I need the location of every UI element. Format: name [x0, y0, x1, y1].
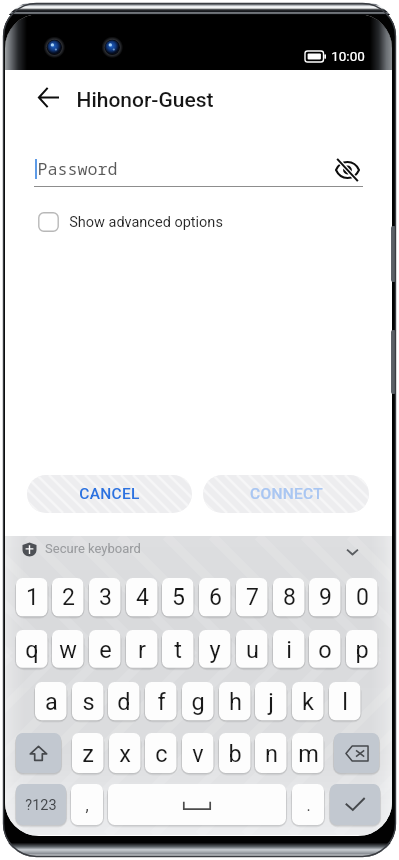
- staticText: 3: [99, 584, 112, 611]
- staticText: 8: [283, 584, 296, 611]
- staticText: y: [209, 636, 221, 664]
- button[interactable]: Show password: [336, 160, 359, 180]
- button[interactable]: x: [107, 732, 143, 777]
- staticText: b: [228, 740, 242, 768]
- button[interactable]: h: [217, 681, 253, 724]
- staticText: w: [59, 636, 77, 664]
- button[interactable]: n: [253, 732, 289, 777]
- staticText: .: [306, 796, 311, 815]
- button[interactable]: .: [290, 783, 326, 829]
- button[interactable]: q: [14, 629, 50, 672]
- button[interactable]: a: [33, 681, 69, 724]
- staticText: i: [286, 636, 292, 664]
- staticText: Password: [37, 157, 118, 180]
- staticText: 5: [172, 584, 185, 611]
- button[interactable]: 4: [124, 577, 160, 620]
- button[interactable]: CONNECT: [203, 475, 369, 513]
- button[interactable]: 5: [160, 577, 196, 620]
- staticText: f: [157, 688, 166, 716]
- staticText: r: [138, 636, 146, 664]
- staticText: CANCEL: [79, 485, 140, 503]
- staticText: Show advanced options: [69, 214, 223, 231]
- button[interactable]: 8: [271, 577, 307, 620]
- button[interactable]: Collapse keyboard: [342, 541, 363, 562]
- staticText: 6: [209, 584, 222, 611]
- staticText: t: [174, 636, 182, 664]
- button[interactable]: 9: [307, 577, 343, 620]
- button[interactable]: CANCEL: [27, 475, 192, 513]
- button[interactable]: 2: [50, 577, 86, 620]
- staticText: s: [82, 688, 95, 716]
- button[interactable]: Back: [38, 87, 59, 108]
- staticText: d: [117, 688, 131, 716]
- staticText: 0: [356, 584, 369, 611]
- button[interactable]: ,: [69, 783, 105, 829]
- button[interactable]: Enter: [328, 783, 382, 829]
- staticText: k: [302, 688, 314, 716]
- staticText: 4: [136, 584, 149, 611]
- button[interactable]: Shift: [14, 732, 63, 777]
- staticText: z: [82, 740, 94, 768]
- staticText: CONNECT: [250, 485, 323, 503]
- staticText: 2: [62, 584, 75, 611]
- staticText: c: [155, 740, 168, 768]
- button[interactable]: y: [197, 629, 233, 672]
- button[interactable]: v: [180, 732, 216, 777]
- staticText: 9: [319, 584, 332, 611]
- staticText: 10:00: [331, 48, 365, 64]
- button[interactable]: 7: [234, 577, 270, 620]
- button[interactable]: 3: [87, 577, 123, 620]
- staticText: v: [192, 740, 204, 768]
- button[interactable]: b: [217, 732, 253, 777]
- staticText: 7: [246, 584, 259, 611]
- button[interactable]: Backspace: [332, 732, 381, 777]
- staticText: n: [265, 740, 278, 768]
- staticText: h: [229, 688, 242, 716]
- button[interactable]: 1: [14, 577, 50, 620]
- button[interactable]: f: [143, 681, 179, 724]
- staticText: l: [342, 688, 348, 716]
- staticText: ?123: [25, 797, 57, 814]
- staticText: Hihonor-Guest: [76, 88, 214, 113]
- staticText: e: [99, 636, 112, 664]
- button[interactable]: t: [160, 629, 196, 672]
- staticText: q: [25, 636, 39, 664]
- button[interactable]: u: [234, 629, 270, 672]
- button[interactable]: k: [290, 681, 326, 724]
- button[interactable]: g: [180, 681, 216, 724]
- button[interactable]: j: [253, 681, 289, 724]
- button[interactable]: w: [50, 629, 86, 672]
- staticText: x: [119, 740, 131, 768]
- button[interactable]: l: [327, 681, 363, 724]
- button[interactable]: Space: [106, 783, 288, 829]
- button[interactable]: i: [271, 629, 307, 672]
- button[interactable]: ?123: [14, 783, 68, 829]
- button[interactable]: 6: [197, 577, 233, 620]
- button[interactable]: m: [290, 732, 326, 777]
- button[interactable]: r: [124, 629, 160, 672]
- staticText: o: [318, 636, 332, 664]
- button[interactable]: p: [344, 629, 380, 672]
- staticText: j: [268, 688, 274, 716]
- button[interactable]: 0: [344, 577, 380, 620]
- button[interactable]: s: [70, 681, 106, 724]
- button[interactable]: z: [70, 732, 106, 777]
- staticText: m: [298, 740, 319, 768]
- button[interactable]: o: [307, 629, 343, 672]
- staticText: 1: [26, 584, 39, 611]
- button[interactable]: d: [106, 681, 142, 724]
- button[interactable]: e: [87, 629, 123, 672]
- staticText: ,: [85, 796, 89, 815]
- staticText: p: [355, 636, 369, 664]
- staticText: u: [246, 636, 259, 664]
- button[interactable]: c: [143, 732, 179, 777]
- staticText: a: [45, 688, 58, 716]
- button[interactable]: Show advanced options: [38, 208, 223, 236]
- staticText: Secure keyboard: [45, 541, 141, 556]
- staticText: g: [191, 688, 205, 716]
